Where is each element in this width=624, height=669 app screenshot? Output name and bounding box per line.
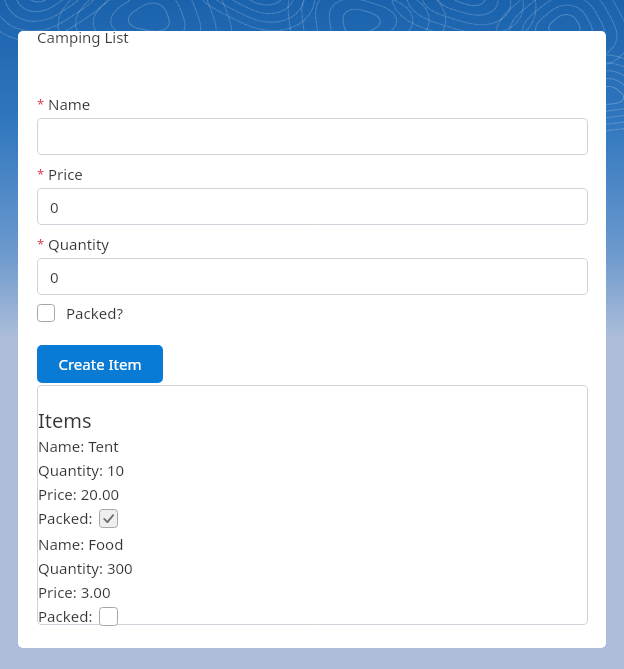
staticText: * <box>37 95 45 113</box>
staticText: Packed: <box>38 606 93 626</box>
staticText: Price <box>48 164 83 184</box>
staticText: * <box>37 165 45 183</box>
staticText: 0 <box>50 197 59 217</box>
button[interactable]: Packed, unchecked <box>37 304 55 322</box>
staticText: Name <box>48 94 91 114</box>
staticText: Quantity: 300 <box>38 558 133 578</box>
staticText: Camping List <box>37 27 129 47</box>
staticText: Price: 3.00 <box>38 582 111 602</box>
staticText: Items <box>38 407 92 434</box>
button[interactable]: Create Item <box>37 345 163 383</box>
button[interactable]: Packed, unchecked <box>99 607 118 626</box>
button[interactable]: 0 <box>37 188 588 225</box>
staticText: Name: Food <box>38 534 124 554</box>
button[interactable] <box>37 118 588 155</box>
staticText: Quantity <box>48 234 110 254</box>
staticText: Name: Tent <box>38 436 119 456</box>
staticText: Packed? <box>66 303 123 323</box>
staticText: Create Item <box>58 354 142 374</box>
button[interactable]: Packed, unchecked <box>37 302 123 324</box>
button[interactable]: 0 <box>37 258 588 295</box>
staticText: Price: 20.00 <box>38 484 120 504</box>
button[interactable]: Packed, checked <box>99 509 118 528</box>
staticText: 0 <box>50 267 59 287</box>
staticText: * <box>37 235 45 253</box>
staticText: Packed: <box>38 508 93 528</box>
staticText: Quantity: 10 <box>38 460 125 480</box>
